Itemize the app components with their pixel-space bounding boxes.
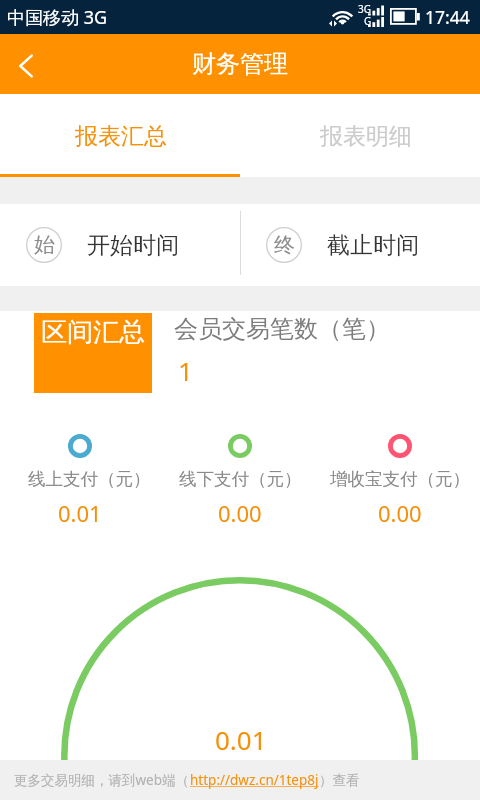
staticText: 线下支付（元） bbox=[179, 468, 302, 490]
staticText: 0.00 bbox=[378, 498, 422, 528]
staticText: 0.01 bbox=[215, 722, 267, 757]
staticText: 0.01 bbox=[58, 498, 102, 528]
staticText: 始 bbox=[34, 232, 55, 258]
staticText: 区间汇总 bbox=[41, 316, 145, 349]
button[interactable]: 终 bbox=[240, 204, 480, 286]
staticText: G bbox=[364, 14, 372, 28]
button[interactable]: 报表汇总 bbox=[0, 94, 240, 174]
staticText: 开始时间 bbox=[87, 231, 179, 260]
button[interactable]: 区间汇总 bbox=[34, 313, 152, 393]
staticText: 中国移动 3G bbox=[7, 5, 108, 30]
staticText: 增收宝支付（元） bbox=[330, 468, 470, 490]
staticText: http://dwz.cn/1tep8j bbox=[190, 771, 319, 789]
staticText: 线上支付（元） bbox=[28, 468, 151, 490]
staticText: 0.00 bbox=[218, 498, 262, 528]
staticText: 截止时间 bbox=[327, 231, 419, 260]
staticText: 终 bbox=[274, 232, 295, 258]
button[interactable]: http://dwz.cn/1tep8j bbox=[190, 771, 319, 789]
staticText: 3G bbox=[358, 2, 371, 16]
staticText: 1 bbox=[178, 353, 193, 388]
staticText: 17:44 bbox=[425, 5, 470, 29]
staticText: 报表明细 bbox=[320, 122, 412, 151]
staticText: ）查看 bbox=[319, 772, 360, 789]
staticText: 会员交易笔数（笔） bbox=[174, 314, 390, 344]
button[interactable]: Back bbox=[0, 34, 52, 94]
button[interactable]: 始 bbox=[0, 204, 240, 286]
staticText: 财务管理 bbox=[192, 49, 288, 79]
button[interactable]: 报表明细 bbox=[240, 94, 480, 174]
staticText: 报表汇总 bbox=[75, 122, 167, 151]
staticText: 更多交易明细，请到web端（ bbox=[14, 771, 190, 789]
